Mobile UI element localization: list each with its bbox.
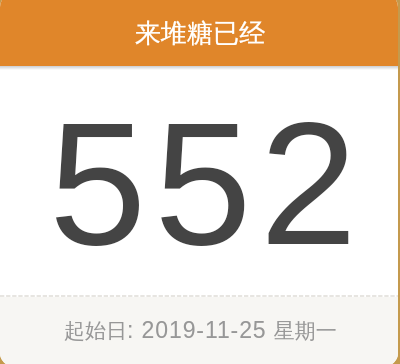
button[interactable]: 来堆糖已经 <box>0 0 400 364</box>
staticText: 来堆糖已经 <box>135 17 265 50</box>
staticText: 起始日: 2019-11-25 星期一 <box>64 317 337 344</box>
staticText: 552 <box>49 86 365 282</box>
